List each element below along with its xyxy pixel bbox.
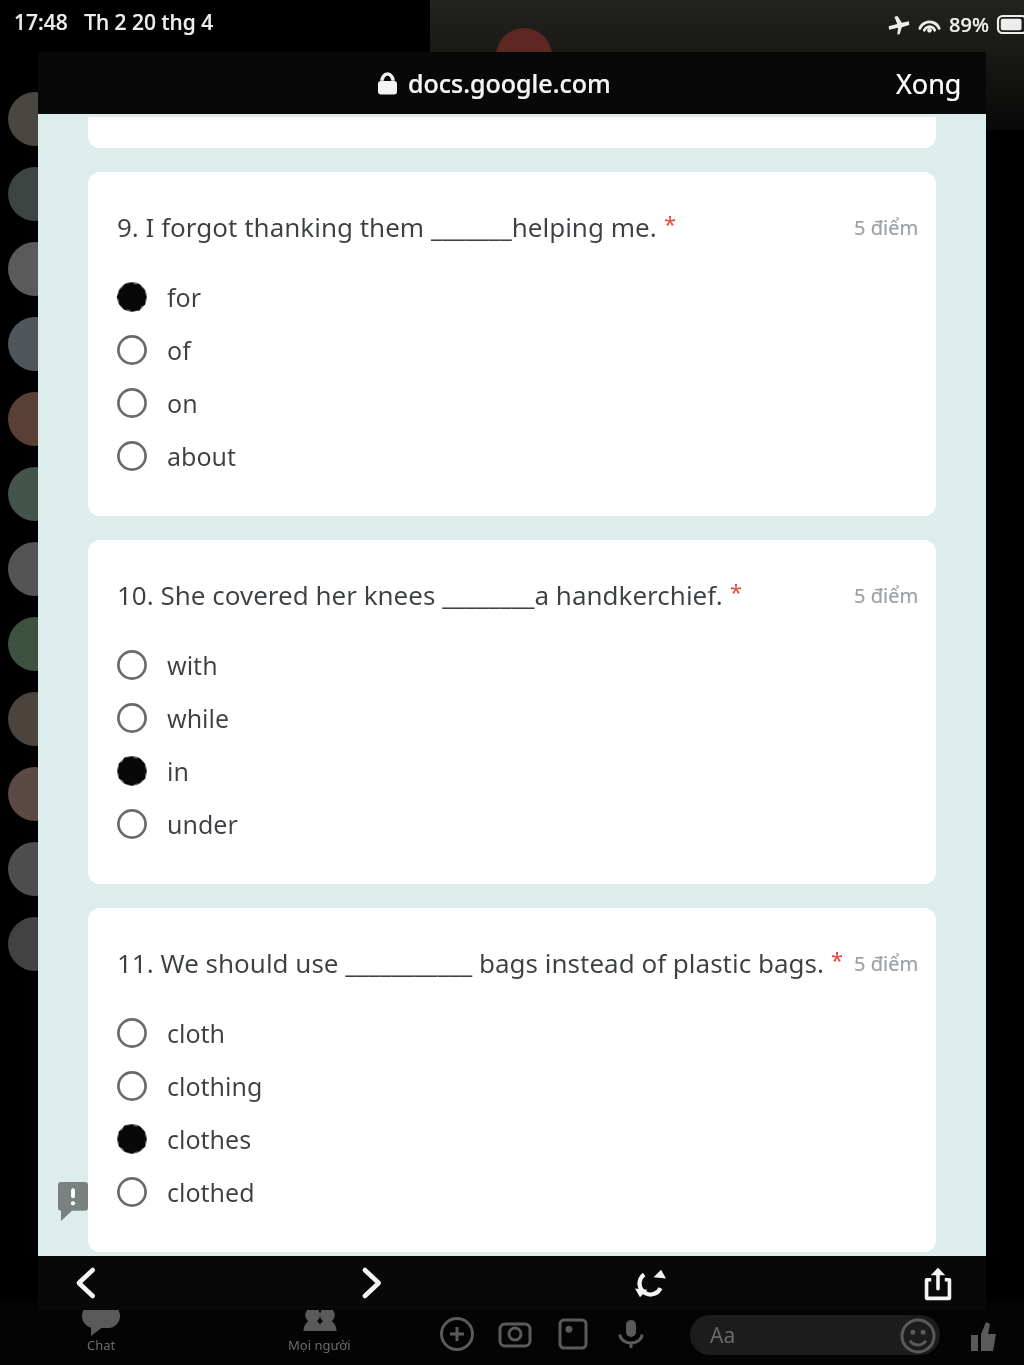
button[interactable]: 9. I forgot thanking them _______helping… [88, 172, 936, 516]
staticText: 17:48 Th 2 20 thg 4 [14, 8, 214, 37]
staticText: about [167, 439, 237, 473]
button[interactable]: Back [64, 1256, 107, 1310]
staticText: on [167, 386, 198, 420]
button[interactable]: on [116, 376, 936, 429]
staticText: Xong [896, 65, 962, 102]
button[interactable]: Forward [350, 1256, 393, 1310]
staticText: 89% [949, 11, 989, 38]
staticText: with [167, 648, 218, 682]
button[interactable]: clothed [116, 1165, 936, 1218]
button[interactable]: Share [914, 1256, 962, 1310]
staticText: * [730, 576, 743, 606]
staticText: Mọi người [288, 1336, 351, 1354]
staticText: clothes [167, 1122, 252, 1156]
staticText: under [167, 807, 238, 841]
button[interactable]: with [116, 638, 936, 691]
staticText: in [167, 754, 189, 788]
staticText: * [664, 208, 677, 238]
button[interactable]: Reload [624, 1257, 677, 1310]
staticText: 5 điểm [854, 950, 919, 977]
staticText: while [167, 701, 230, 735]
staticText: Aa [710, 1321, 736, 1350]
button[interactable]: of [116, 323, 936, 376]
button[interactable]: 11. We should use ___________ bags inste… [88, 908, 936, 1252]
staticText: Chat [87, 1336, 116, 1354]
staticText: * [831, 944, 844, 974]
staticText: 5 điểm [854, 582, 919, 609]
staticText: 9. I forgot thanking them _______helping… [117, 209, 657, 244]
button[interactable]: under [116, 797, 936, 850]
button[interactable]: cloth [116, 1006, 936, 1059]
staticText: of [167, 333, 191, 367]
button[interactable]: clothes [116, 1112, 936, 1165]
staticText: 11. We should use ___________ bags inste… [117, 945, 824, 980]
button[interactable]: in [116, 744, 936, 797]
staticText: 5 điểm [854, 214, 919, 241]
staticText: docs.google.com [408, 66, 611, 100]
button[interactable]: while [116, 691, 936, 744]
button[interactable]: for [116, 270, 936, 323]
button[interactable]: 10. She covered her knees ________a hand… [88, 540, 936, 884]
staticText: for [167, 280, 202, 314]
staticText: clothing [167, 1069, 263, 1103]
button[interactable]: about [116, 429, 936, 482]
staticText: clothed [167, 1175, 255, 1209]
button[interactable]: clothing [116, 1059, 936, 1112]
button[interactable]: Xong [872, 55, 986, 112]
staticText: cloth [167, 1016, 226, 1050]
staticText: 10. She covered her knees ________a hand… [117, 577, 723, 612]
